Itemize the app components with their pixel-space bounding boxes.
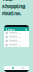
staticText: in one shared place	[2, 4, 25, 15]
staticText: Your shopping routine,	[2, 0, 25, 17]
staticText: Lists	[6, 27, 15, 32]
